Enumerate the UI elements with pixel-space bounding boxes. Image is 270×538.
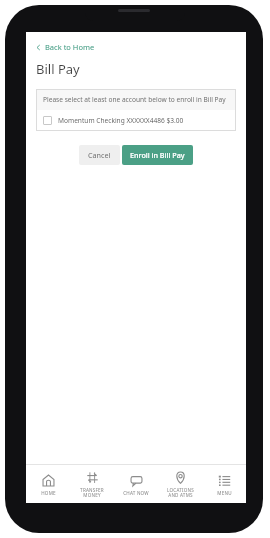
button[interactable]: Chat Now — [114, 469, 158, 500]
staticText: Cancel — [88, 150, 111, 160]
staticText: LOCATIONS AND ATMS — [167, 487, 194, 499]
button[interactable]: Back to Home — [26, 40, 105, 54]
staticText: TRANSFER MONEY — [80, 487, 104, 499]
button[interactable]: Transfer Money — [70, 466, 114, 503]
staticText: Bill Pay — [36, 60, 80, 78]
staticText: HOME — [41, 490, 56, 496]
button[interactable]: Locations and ATMs — [158, 466, 202, 503]
button[interactable]: Momentum Checking XXXXXX4486 $3.00 — [36, 110, 236, 131]
button[interactable]: Menu — [202, 469, 246, 500]
button[interactable]: Home — [26, 469, 70, 500]
button[interactable]: Enroll in Bill Pay — [122, 145, 193, 165]
staticText: CHAT NOW — [123, 490, 149, 496]
staticText: Enroll in Bill Pay — [130, 150, 185, 160]
staticText: Please select at least one account below… — [43, 95, 226, 104]
staticText: Back to Home — [45, 42, 95, 52]
staticText: Momentum Checking XXXXXX4486 $3.00 — [58, 116, 184, 125]
staticText: MENU — [217, 490, 232, 496]
button[interactable]: Cancel — [79, 145, 120, 165]
